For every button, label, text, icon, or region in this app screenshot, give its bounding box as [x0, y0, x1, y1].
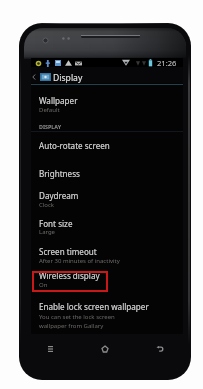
- staticText: Brightness: [39, 168, 80, 179]
- button[interactable]: Navigate up: [31, 71, 39, 83]
- staticText: Large: [39, 228, 56, 236]
- button[interactable]: Home: [91, 338, 119, 360]
- staticText: Auto-rotate screen: [39, 140, 110, 151]
- button[interactable]: [32, 271, 108, 292]
- staticText: On: [39, 281, 48, 289]
- staticText: Enable lock screen wallpaper: [39, 301, 149, 312]
- staticText: Screen timeout: [39, 246, 97, 257]
- staticText: wallpaper from Gallary: [39, 322, 104, 330]
- staticText: After 30 minutes of inactivity: [39, 257, 120, 265]
- staticText: You can set the lock screen: [39, 313, 115, 321]
- staticText: Wallpaper: [39, 95, 78, 106]
- staticText: Daydream: [39, 190, 79, 201]
- staticText: Wireless display: [39, 270, 100, 281]
- staticText: DISPLAY: [39, 123, 62, 130]
- staticText: Display: [53, 72, 83, 84]
- staticText: Font size: [39, 218, 73, 229]
- staticText: 21:26: [157, 58, 177, 68]
- staticText: Default: [39, 106, 60, 114]
- button[interactable]: Recent apps: [36, 338, 64, 360]
- button[interactable]: Back: [145, 338, 173, 360]
- staticText: Clock: [39, 201, 55, 209]
